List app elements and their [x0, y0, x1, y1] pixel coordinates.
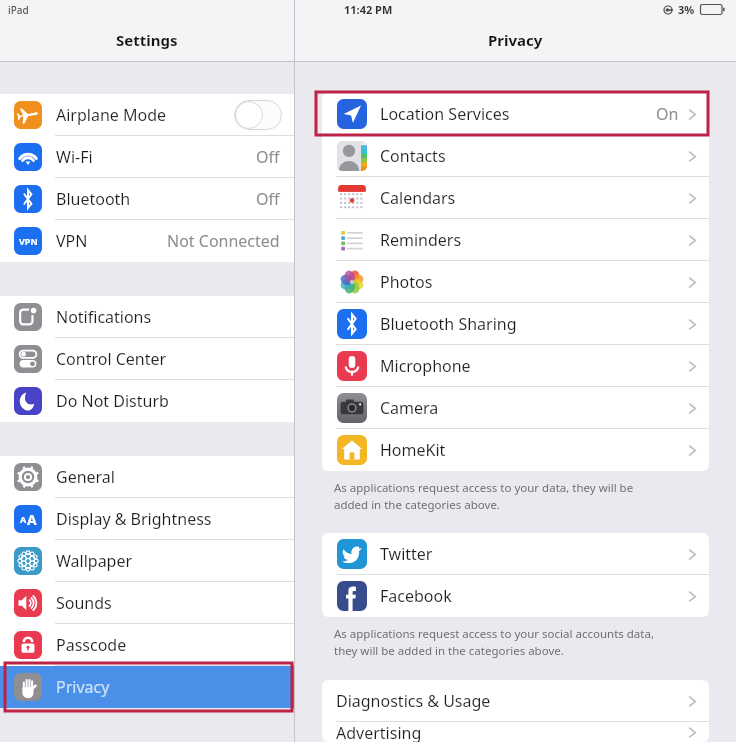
staticText: Photos [380, 271, 433, 293]
staticText: VPN [19, 235, 38, 247]
staticText: Airplane Mode [56, 104, 167, 126]
staticText: Bluetooth [56, 188, 131, 210]
button[interactable]: Notifications [0, 296, 294, 338]
button[interactable]: Diagnostics & Usage [322, 680, 709, 722]
button[interactable]: Reminders [322, 219, 709, 261]
staticText: Sounds [56, 592, 112, 614]
staticText: Location Services [380, 103, 510, 125]
staticText: Not Connected [167, 230, 280, 252]
button[interactable]: A [0, 498, 294, 540]
staticText: Microphone [380, 355, 471, 377]
staticText: Off [256, 188, 280, 210]
staticText: Contacts [380, 145, 446, 167]
staticText: General [56, 466, 115, 488]
staticText: Calendars [380, 187, 456, 209]
staticText: Wallpaper [56, 550, 133, 572]
staticText: Advertising [336, 722, 422, 742]
staticText: HomeKit [380, 439, 446, 461]
staticText: Wi-Fi [56, 146, 93, 168]
staticText: Settings [116, 30, 178, 50]
button[interactable]: Contacts [322, 135, 709, 177]
button[interactable]: Airplane Mode toggle [234, 100, 282, 130]
staticText: Diagnostics & Usage [336, 690, 491, 712]
button[interactable]: Sounds [0, 582, 294, 624]
staticText: Privacy [488, 30, 543, 50]
staticText: Privacy [56, 676, 110, 698]
staticText: Notifications [56, 306, 152, 328]
button[interactable]: Advertising [322, 722, 709, 742]
button[interactable]: Wallpaper [0, 540, 294, 582]
staticText: Twitter [380, 543, 433, 565]
button[interactable]: General [0, 456, 294, 498]
button[interactable]: Twitter [322, 533, 709, 575]
staticText: Camera [380, 397, 439, 419]
button[interactable]: Do Not Disturb [0, 380, 294, 422]
staticText: Off [256, 146, 280, 168]
button[interactable]: Camera [322, 387, 709, 429]
button[interactable]: Wi-Fi [0, 136, 294, 178]
staticText: Facebook [380, 585, 452, 607]
staticText: Reminders [380, 229, 462, 251]
button[interactable]: Bluetooth Sharing [322, 303, 709, 345]
button[interactable]: Facebook [322, 575, 709, 617]
button[interactable]: Airplane Mode [0, 94, 294, 136]
button[interactable]: Microphone [322, 345, 709, 387]
button[interactable]: VPN [0, 220, 294, 262]
staticText: 3% [678, 2, 695, 17]
staticText: iPad [8, 3, 29, 17]
button[interactable]: HomeKit [322, 429, 709, 471]
staticText: Display & Brightness [56, 508, 212, 530]
staticText: VPN [56, 230, 88, 252]
staticText: Control Center [56, 348, 167, 370]
button[interactable]: Passcode [0, 624, 294, 666]
button[interactable]: Control Center [0, 338, 294, 380]
staticText: As applications request access to your s… [334, 626, 654, 658]
staticText: Passcode [56, 634, 127, 656]
button[interactable]: Bluetooth [0, 178, 294, 220]
staticText: As applications request access to your d… [334, 480, 634, 512]
staticText: 11:42 PM [344, 2, 393, 17]
staticText: A [27, 510, 37, 529]
staticText: On [656, 103, 679, 125]
button[interactable]: Calendars [322, 177, 709, 219]
button[interactable]: Privacy [0, 666, 294, 708]
staticText: Do Not Disturb [56, 390, 169, 412]
staticText: A [20, 513, 27, 525]
button[interactable]: Location Services [322, 93, 709, 135]
button[interactable]: Photos [322, 261, 709, 303]
staticText: Bluetooth Sharing [380, 313, 517, 335]
